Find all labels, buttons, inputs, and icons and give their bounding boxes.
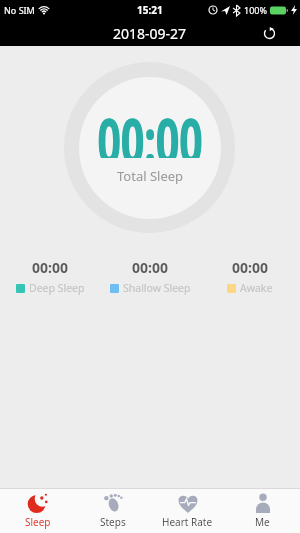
staticText: Total Sleep bbox=[117, 167, 184, 185]
staticText: Steps bbox=[100, 515, 126, 529]
button[interactable]: Me bbox=[225, 489, 300, 533]
staticText: 2018-09-27 bbox=[113, 24, 187, 43]
staticText: 00:00 bbox=[98, 98, 203, 158]
button[interactable]: Steps bbox=[75, 489, 150, 533]
staticText: Deep Sleep bbox=[29, 281, 85, 295]
button[interactable]: Sleep bbox=[0, 489, 75, 533]
staticText: 00:00 bbox=[32, 258, 68, 277]
staticText: 15:21 bbox=[137, 3, 163, 17]
staticText: Shallow Sleep bbox=[123, 281, 191, 295]
staticText: Heart Rate bbox=[162, 515, 213, 529]
staticText: 100% bbox=[244, 4, 267, 16]
staticText: 00:00 bbox=[97, 98, 203, 158]
staticText: Me bbox=[255, 515, 270, 529]
staticText: Sleep bbox=[25, 515, 51, 529]
staticText: 00:00 bbox=[132, 258, 168, 277]
staticText: Awake bbox=[240, 281, 273, 295]
button[interactable] bbox=[256, 20, 282, 46]
staticText: 00:00 bbox=[232, 258, 268, 277]
staticText: No SIM bbox=[4, 4, 35, 16]
button[interactable]: Heart Rate bbox=[150, 489, 225, 533]
